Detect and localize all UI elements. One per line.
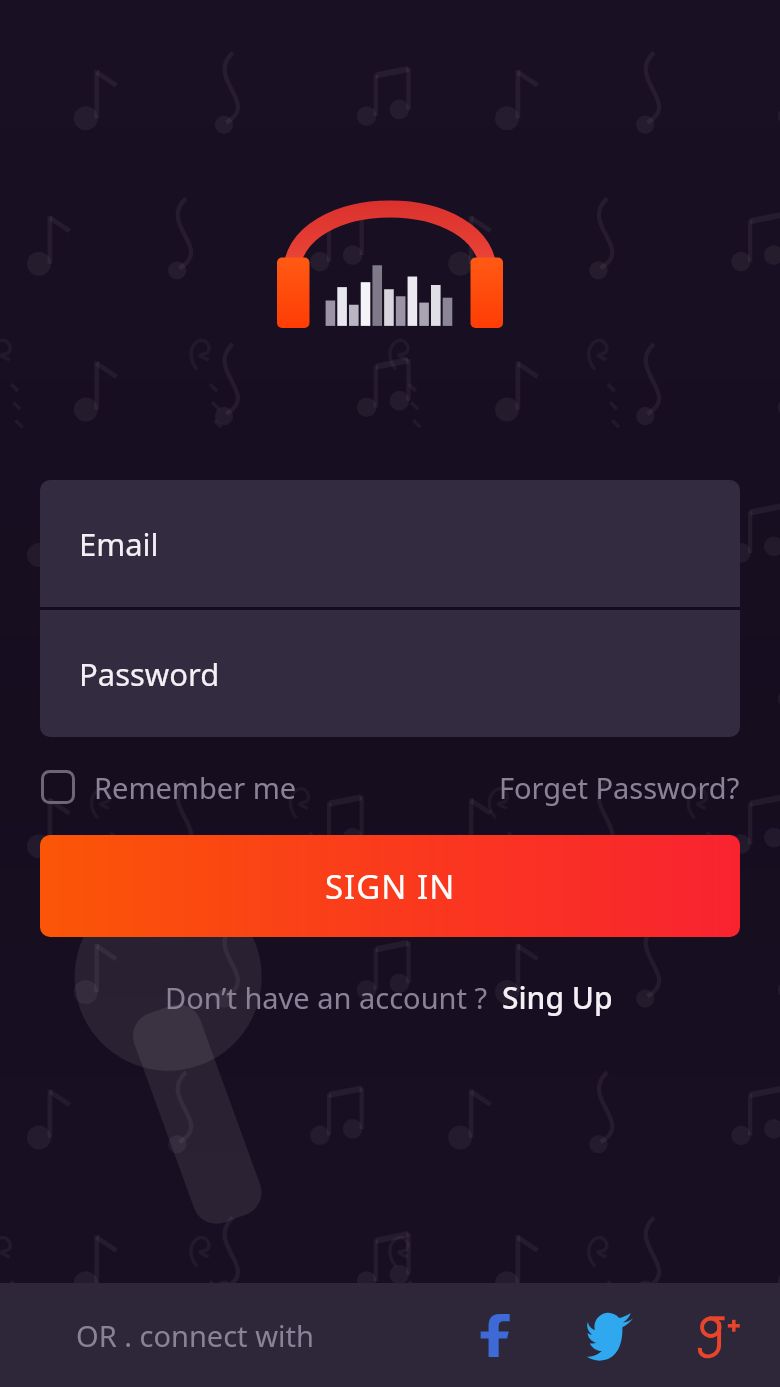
staticText: Email (79, 523, 159, 565)
staticText: Password (79, 653, 220, 695)
button[interactable]: Forget Password? (499, 761, 740, 813)
staticText: Remember me (94, 768, 297, 807)
staticText: Forget Password? (499, 768, 740, 807)
staticText: Sing Up (502, 977, 613, 1018)
button[interactable]: SIGN IN (40, 835, 740, 937)
button[interactable]: Sing Up (500, 971, 615, 1024)
button[interactable]: Sign in with Facebook (462, 1297, 538, 1373)
staticText: Don’t have an account ? (165, 978, 488, 1017)
button[interactable]: Password (40, 610, 740, 737)
button[interactable]: Email (40, 480, 740, 607)
button[interactable]: Sign in with Twitter (572, 1297, 648, 1373)
button[interactable]: Remember me (40, 761, 297, 813)
staticText: OR . connect with (76, 1316, 314, 1355)
button[interactable]: Sign in with Google Plus (682, 1297, 758, 1373)
staticText: SIGN IN (325, 864, 456, 909)
